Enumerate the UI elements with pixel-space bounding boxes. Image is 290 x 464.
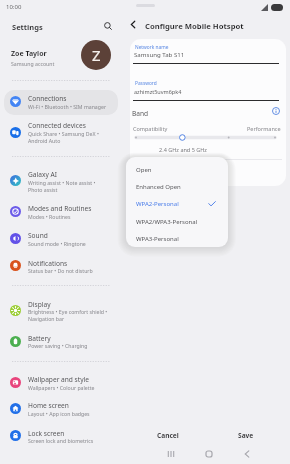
staticText: Samsung account <box>11 60 55 67</box>
staticText: Display <box>28 300 51 309</box>
button[interactable]: Back <box>126 17 141 32</box>
staticText: Connections <box>28 94 67 103</box>
staticText: Password <box>135 80 157 87</box>
button[interactable]: Back <box>239 446 255 462</box>
staticText: Open <box>136 166 152 174</box>
staticText: Samsung Tab S11 <box>134 50 185 58</box>
staticText: Status bar • Do not disturb <box>28 267 93 274</box>
staticText: Band <box>132 109 149 118</box>
staticText: Notifications <box>28 259 68 268</box>
staticText: Wallpaper and style <box>28 375 89 384</box>
staticText: Configure Mobile Hotspot <box>145 21 244 31</box>
staticText: Screen lock and biometrics <box>28 437 94 444</box>
staticText: Battery <box>28 334 51 343</box>
staticText: Galaxy AI <box>28 170 57 179</box>
staticText: Wi-Fi • Bluetooth • SIM manager <box>28 103 107 110</box>
staticText: Writing assist • Note assist • Photo ass… <box>28 179 96 193</box>
button[interactable]: Z <box>81 40 111 70</box>
staticText: Z <box>92 45 101 65</box>
button[interactable]: Home <box>201 446 217 462</box>
staticText: Modes • Routines <box>28 213 71 220</box>
staticText: Performance <box>247 125 281 132</box>
staticText: Quick Share • Samsung DeX • Android Auto <box>28 130 99 144</box>
button[interactable] <box>4 255 118 276</box>
button[interactable]: Cancel <box>129 428 207 443</box>
button[interactable]: Open <box>126 161 228 178</box>
button[interactable]: Search <box>100 18 115 33</box>
staticText: Home screen <box>28 401 69 410</box>
staticText: Brightness • Eye comfort shield • Naviga… <box>28 308 108 322</box>
button[interactable] <box>4 168 118 194</box>
staticText: azhimzt5uvm6pk4 <box>134 88 182 95</box>
button[interactable]: Recent apps <box>163 446 179 462</box>
staticText: Settings <box>12 22 43 32</box>
button[interactable]: Enhanced Open <box>126 178 228 195</box>
button[interactable]: WPA3-Personal <box>126 230 228 247</box>
staticText: Save <box>238 431 254 440</box>
staticText: Sound mode • Ringtone <box>28 240 86 247</box>
button[interactable] <box>4 372 118 393</box>
staticText: Sound <box>28 231 48 240</box>
staticText: Enhanced Open <box>136 183 181 191</box>
staticText: Network name <box>135 44 169 51</box>
staticText: 10:00 <box>6 3 22 11</box>
staticText: Compatibility <box>133 125 168 132</box>
staticText: Cancel <box>157 431 179 440</box>
staticText: Layout • App icon badges <box>28 410 90 417</box>
button[interactable]: Zoe Taylor <box>5 40 118 70</box>
button[interactable] <box>4 425 118 446</box>
button[interactable]: WPA2/WPA3-Personal <box>126 213 228 230</box>
staticText: Lock screen <box>28 429 65 438</box>
staticText: Zoe Taylor <box>11 49 47 59</box>
button[interactable]: Information <box>271 106 280 115</box>
button[interactable]: WPA2-Personal <box>126 195 228 212</box>
button[interactable] <box>4 201 118 222</box>
button[interactable] <box>4 119 118 145</box>
staticText: Power saving • Charging <box>28 342 88 349</box>
button[interactable]: Save <box>207 428 285 443</box>
staticText: Wallpapers • Colour palette <box>28 384 95 391</box>
button[interactable] <box>4 297 118 323</box>
staticText: WPA2-Personal <box>136 200 179 208</box>
button[interactable] <box>4 228 118 249</box>
staticText: WPA3-Personal <box>136 235 179 243</box>
button[interactable] <box>4 398 118 419</box>
button[interactable] <box>4 91 118 112</box>
staticText: Modes and Routines <box>28 204 92 213</box>
staticText: 2.4 GHz and 5 GHz <box>159 146 207 153</box>
staticText: WPA2/WPA3-Personal <box>136 218 198 226</box>
button[interactable] <box>4 331 118 352</box>
staticText: Connected devices <box>28 121 86 130</box>
